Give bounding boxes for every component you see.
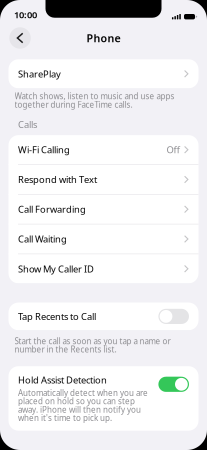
staticText: Phone	[86, 31, 120, 45]
staticText: Call Forwarding	[18, 203, 86, 215]
staticText: Call Waiting	[18, 233, 67, 245]
staticText: Show My Caller ID	[18, 263, 94, 275]
staticText: SharePlay	[18, 68, 61, 80]
staticText: Hold Assist Detection	[18, 374, 107, 386]
staticText: Watch shows, listen to music and use app…	[14, 91, 174, 110]
button[interactable]: Hold Assist Detection	[8, 366, 198, 431]
button[interactable]: Tap Recents to Call	[8, 302, 198, 330]
staticText: Off	[167, 143, 180, 156]
staticText: Start the call as soon as you tap a name…	[14, 336, 170, 355]
button[interactable]: SharePlay	[8, 59, 198, 88]
staticText: Respond with Text	[18, 173, 97, 186]
staticText: Wi-Fi Calling	[18, 143, 70, 156]
button[interactable]: Show My Caller ID	[8, 254, 198, 283]
staticText: 10:00	[14, 8, 37, 21]
button[interactable]: Wi-Fi Calling	[8, 135, 198, 164]
staticText: Tap Recents to Call	[18, 310, 96, 323]
button[interactable]: Back	[9, 27, 31, 49]
button[interactable]: Call Waiting	[8, 224, 198, 254]
staticText: Calls	[18, 118, 37, 131]
staticText: Automatically detect when you are placed…	[18, 388, 148, 423]
button[interactable]: Respond with Text	[8, 165, 198, 194]
button[interactable]: Call Forwarding	[8, 195, 198, 224]
